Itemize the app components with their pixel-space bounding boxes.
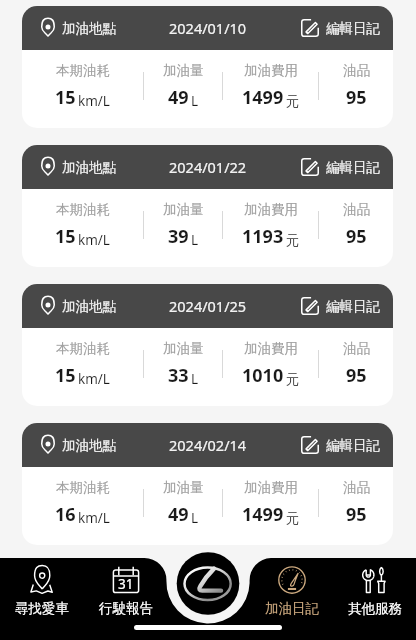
staticText: 加油量 (163, 62, 204, 79)
staticText: 1010 (242, 363, 284, 388)
staticText: 加油地點 (62, 159, 116, 176)
staticText: 95 (346, 85, 367, 110)
button[interactable]: 加油地點 (22, 6, 393, 128)
staticText: 加油地點 (62, 298, 116, 315)
staticText: 本期油耗 (56, 479, 110, 496)
staticText: 元 (286, 371, 300, 388)
staticText: 加油費用 (244, 62, 298, 79)
staticText: 編輯日記 (326, 437, 380, 454)
staticText: 加油日記 (265, 600, 319, 617)
staticText: 33 (168, 363, 189, 388)
staticText: L (191, 92, 199, 110)
staticText: L (191, 231, 199, 249)
staticText: 元 (286, 232, 300, 249)
button[interactable]: 加油地點 (22, 423, 393, 545)
staticText: 編輯日記 (326, 20, 380, 37)
staticText: 加油地點 (62, 20, 116, 37)
staticText: 加油量 (163, 201, 204, 218)
staticText: 加油量 (163, 340, 204, 357)
staticText: 15 (55, 85, 76, 110)
staticText: 元 (286, 510, 300, 527)
staticText: L (191, 509, 199, 527)
staticText: 31 (118, 575, 134, 593)
staticText: 加油費用 (244, 340, 298, 357)
staticText: 其他服務 (348, 600, 402, 617)
staticText: 編輯日記 (326, 298, 380, 315)
staticText: 49 (168, 85, 189, 110)
staticText: km/L (78, 231, 110, 249)
staticText: 1499 (242, 502, 284, 527)
staticText: 尋找愛車 (15, 600, 69, 617)
staticText: 2024/02/14 (169, 435, 247, 455)
button[interactable]: 加油地點 (22, 145, 393, 267)
staticText: 本期油耗 (56, 340, 110, 357)
button[interactable]: 加油日記 (250, 558, 333, 617)
staticText: 編輯日記 (326, 159, 380, 176)
staticText: 本期油耗 (56, 62, 110, 79)
staticText: 95 (346, 224, 367, 249)
staticText: 本期油耗 (56, 201, 110, 218)
button[interactable]: 尋找愛車 (0, 558, 84, 617)
staticText: L (191, 370, 199, 388)
staticText: 95 (346, 363, 367, 388)
staticText: 1193 (242, 224, 284, 249)
staticText: 油品 (343, 62, 370, 79)
staticText: 2024/01/25 (169, 296, 247, 316)
staticText: 油品 (343, 479, 370, 496)
button[interactable]: 加油地點 (22, 284, 393, 406)
button[interactable]: 其他服務 (333, 558, 416, 617)
staticText: 加油費用 (244, 479, 298, 496)
staticText: 49 (168, 502, 189, 527)
staticText: 加油費用 (244, 201, 298, 218)
staticText: km/L (78, 370, 110, 388)
staticText: 元 (286, 93, 300, 110)
staticText: 油品 (343, 201, 370, 218)
staticText: 1499 (242, 85, 284, 110)
staticText: 15 (55, 224, 76, 249)
staticText: 油品 (343, 340, 370, 357)
button[interactable]: Lexus (184, 565, 232, 613)
staticText: 2024/01/22 (169, 157, 247, 177)
staticText: km/L (78, 509, 110, 527)
staticText: 95 (346, 502, 367, 527)
staticText: 16 (55, 502, 76, 527)
staticText: 2024/01/10 (169, 18, 247, 38)
staticText: 15 (55, 363, 76, 388)
staticText: 加油量 (163, 479, 204, 496)
staticText: km/L (78, 92, 110, 110)
staticText: 39 (168, 224, 189, 249)
staticText: 行駛報告 (99, 600, 153, 617)
staticText: 加油地點 (62, 437, 116, 454)
button[interactable]: 31 (84, 558, 167, 617)
